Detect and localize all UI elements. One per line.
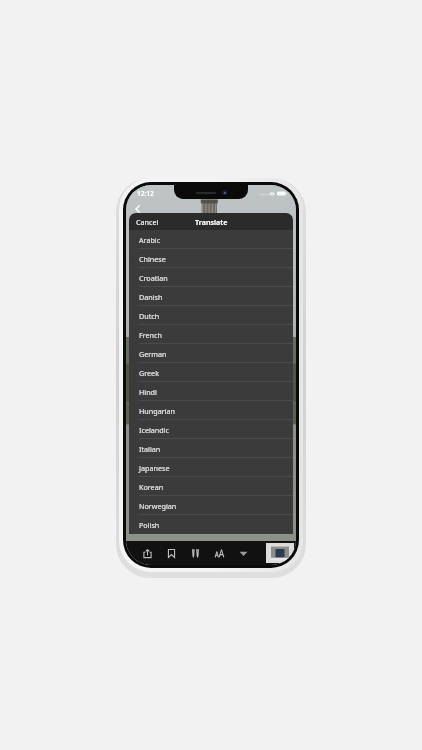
button[interactable]: Dutch xyxy=(129,306,293,325)
staticText: Danish xyxy=(139,292,163,302)
staticText: Hindi xyxy=(139,387,157,397)
button[interactable]: Croatian xyxy=(129,268,293,287)
button[interactable]: Chinese xyxy=(129,249,293,268)
staticText: Norwegian xyxy=(139,501,177,511)
staticText: Italian xyxy=(139,444,161,454)
button[interactable]: French xyxy=(129,325,293,344)
button[interactable]: Cancel xyxy=(129,213,166,230)
button[interactable]: Danish xyxy=(129,287,293,306)
button[interactable]: Arabic xyxy=(129,230,293,249)
button[interactable]: Norwegian xyxy=(129,496,293,515)
button[interactable]: Italian xyxy=(129,439,293,458)
button[interactable]: Photo thumbnail xyxy=(266,543,294,563)
button[interactable]: Share xyxy=(138,544,156,562)
staticText: Croatian xyxy=(139,273,168,283)
staticText: Hungarian xyxy=(139,406,175,416)
button[interactable]: Hungarian xyxy=(129,401,293,420)
staticText: Polish xyxy=(139,520,160,530)
staticText: French xyxy=(139,330,162,340)
staticText: Icelandic xyxy=(139,425,169,435)
staticText: Korean xyxy=(139,482,164,492)
button[interactable]: Hindi xyxy=(129,382,293,401)
staticText: German xyxy=(139,349,167,359)
button[interactable]: Bookmark xyxy=(162,544,180,562)
staticText: Translate xyxy=(195,217,228,227)
button[interactable]: German xyxy=(129,344,293,363)
button[interactable]: Icelandic xyxy=(129,420,293,439)
button[interactable]: More xyxy=(234,544,252,562)
button[interactable]: Polish xyxy=(129,515,293,534)
button[interactable]: Markup xyxy=(186,544,204,562)
button[interactable]: Japanese xyxy=(129,458,293,477)
staticText: 12:12 xyxy=(137,189,154,198)
staticText: Cancel xyxy=(136,217,159,227)
staticText: Chinese xyxy=(139,254,166,264)
button[interactable]: Greek xyxy=(129,363,293,382)
staticText: Japanese xyxy=(139,463,170,473)
button[interactable]: Text size xyxy=(210,544,228,562)
staticText: Dutch xyxy=(139,311,160,321)
button[interactable]: Back xyxy=(130,201,146,217)
button[interactable]: Korean xyxy=(129,477,293,496)
staticText: Arabic xyxy=(139,235,161,245)
staticText: Greek xyxy=(139,368,160,378)
